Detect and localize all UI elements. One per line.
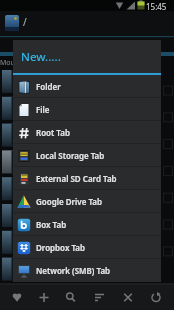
button[interactable] [116,284,145,310]
button[interactable]: Folder [13,75,161,98]
button[interactable] [58,284,87,310]
staticText: Dropbox Tab [36,242,86,253]
button[interactable]: Root Tab [13,121,161,144]
staticText: Google Drive Tab [36,196,103,207]
staticText: / [23,15,27,29]
button[interactable]: Google Drive Tab [13,190,161,213]
staticText: Box Tab [36,219,67,230]
staticText: External SD Card Tab [36,173,117,184]
button[interactable] [87,284,116,310]
button[interactable] [29,284,58,310]
staticText: Folder [36,81,61,92]
button[interactable]: Network (SMB) Tab [13,259,161,282]
staticText: 15:45 [146,1,167,12]
staticText: File [36,104,50,115]
button[interactable]: External SD Card Tab [13,167,161,190]
staticText: Network (SMB) Tab [36,265,111,276]
button[interactable]: Dropbox Tab [13,236,161,259]
button[interactable]: Local Storage Tab [13,144,161,167]
staticText: Local Storage Tab [36,150,105,161]
button[interactable]: File [13,98,161,121]
button[interactable]: Box Tab [13,213,161,236]
staticText: New..... [21,49,61,65]
button[interactable] [0,284,29,310]
staticText: Root Tab [36,127,70,138]
staticText: Mou [0,58,15,68]
button[interactable] [145,284,174,310]
